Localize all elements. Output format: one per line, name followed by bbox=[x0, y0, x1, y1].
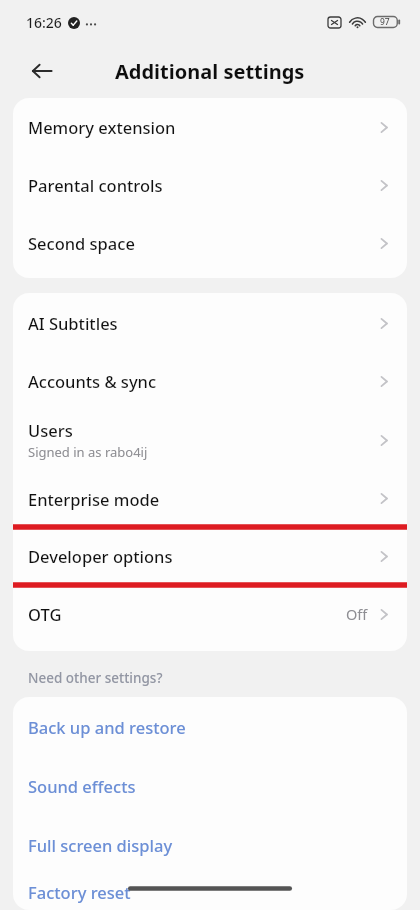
staticText: Developer options bbox=[28, 545, 173, 567]
button[interactable]: Users bbox=[13, 410, 407, 470]
staticText: Enterprise mode bbox=[28, 488, 160, 510]
staticText: OTG bbox=[28, 603, 62, 625]
button[interactable]: Developer options bbox=[13, 527, 407, 585]
button[interactable]: Second space bbox=[13, 214, 407, 272]
button[interactable]: Factory reset bbox=[13, 874, 407, 910]
button[interactable]: Sound effects bbox=[13, 756, 407, 815]
staticText: 16:26 bbox=[26, 13, 62, 32]
button[interactable]: Parental controls bbox=[13, 156, 407, 214]
staticText: Back up and restore bbox=[28, 716, 186, 738]
staticText: Off bbox=[346, 604, 368, 624]
button[interactable]: Accounts & sync bbox=[13, 352, 407, 410]
staticText: Users bbox=[28, 419, 73, 441]
button[interactable]: Memory extension bbox=[13, 98, 407, 156]
staticText: Need other settings? bbox=[28, 669, 163, 687]
staticText: Additional settings bbox=[115, 58, 305, 85]
staticText: Signed in as rabo4ij bbox=[28, 443, 148, 461]
staticText: Sound effects bbox=[28, 775, 136, 797]
staticText: Parental controls bbox=[28, 174, 163, 196]
staticText: Accounts & sync bbox=[28, 370, 157, 392]
staticText: Second space bbox=[28, 232, 135, 254]
button[interactable]: AI Subtitles bbox=[13, 294, 407, 352]
button[interactable]: Full screen display bbox=[13, 815, 407, 874]
staticText: Factory reset bbox=[28, 881, 131, 903]
button[interactable]: Back up and restore bbox=[13, 697, 407, 756]
staticText: 97 bbox=[380, 16, 390, 28]
staticText: AI Subtitles bbox=[28, 312, 118, 334]
staticText: Full screen display bbox=[28, 834, 173, 856]
staticText: Memory extension bbox=[28, 116, 176, 138]
button[interactable]: OTG bbox=[13, 585, 407, 643]
button[interactable]: Back bbox=[22, 51, 62, 91]
button[interactable]: Enterprise mode bbox=[13, 470, 407, 527]
